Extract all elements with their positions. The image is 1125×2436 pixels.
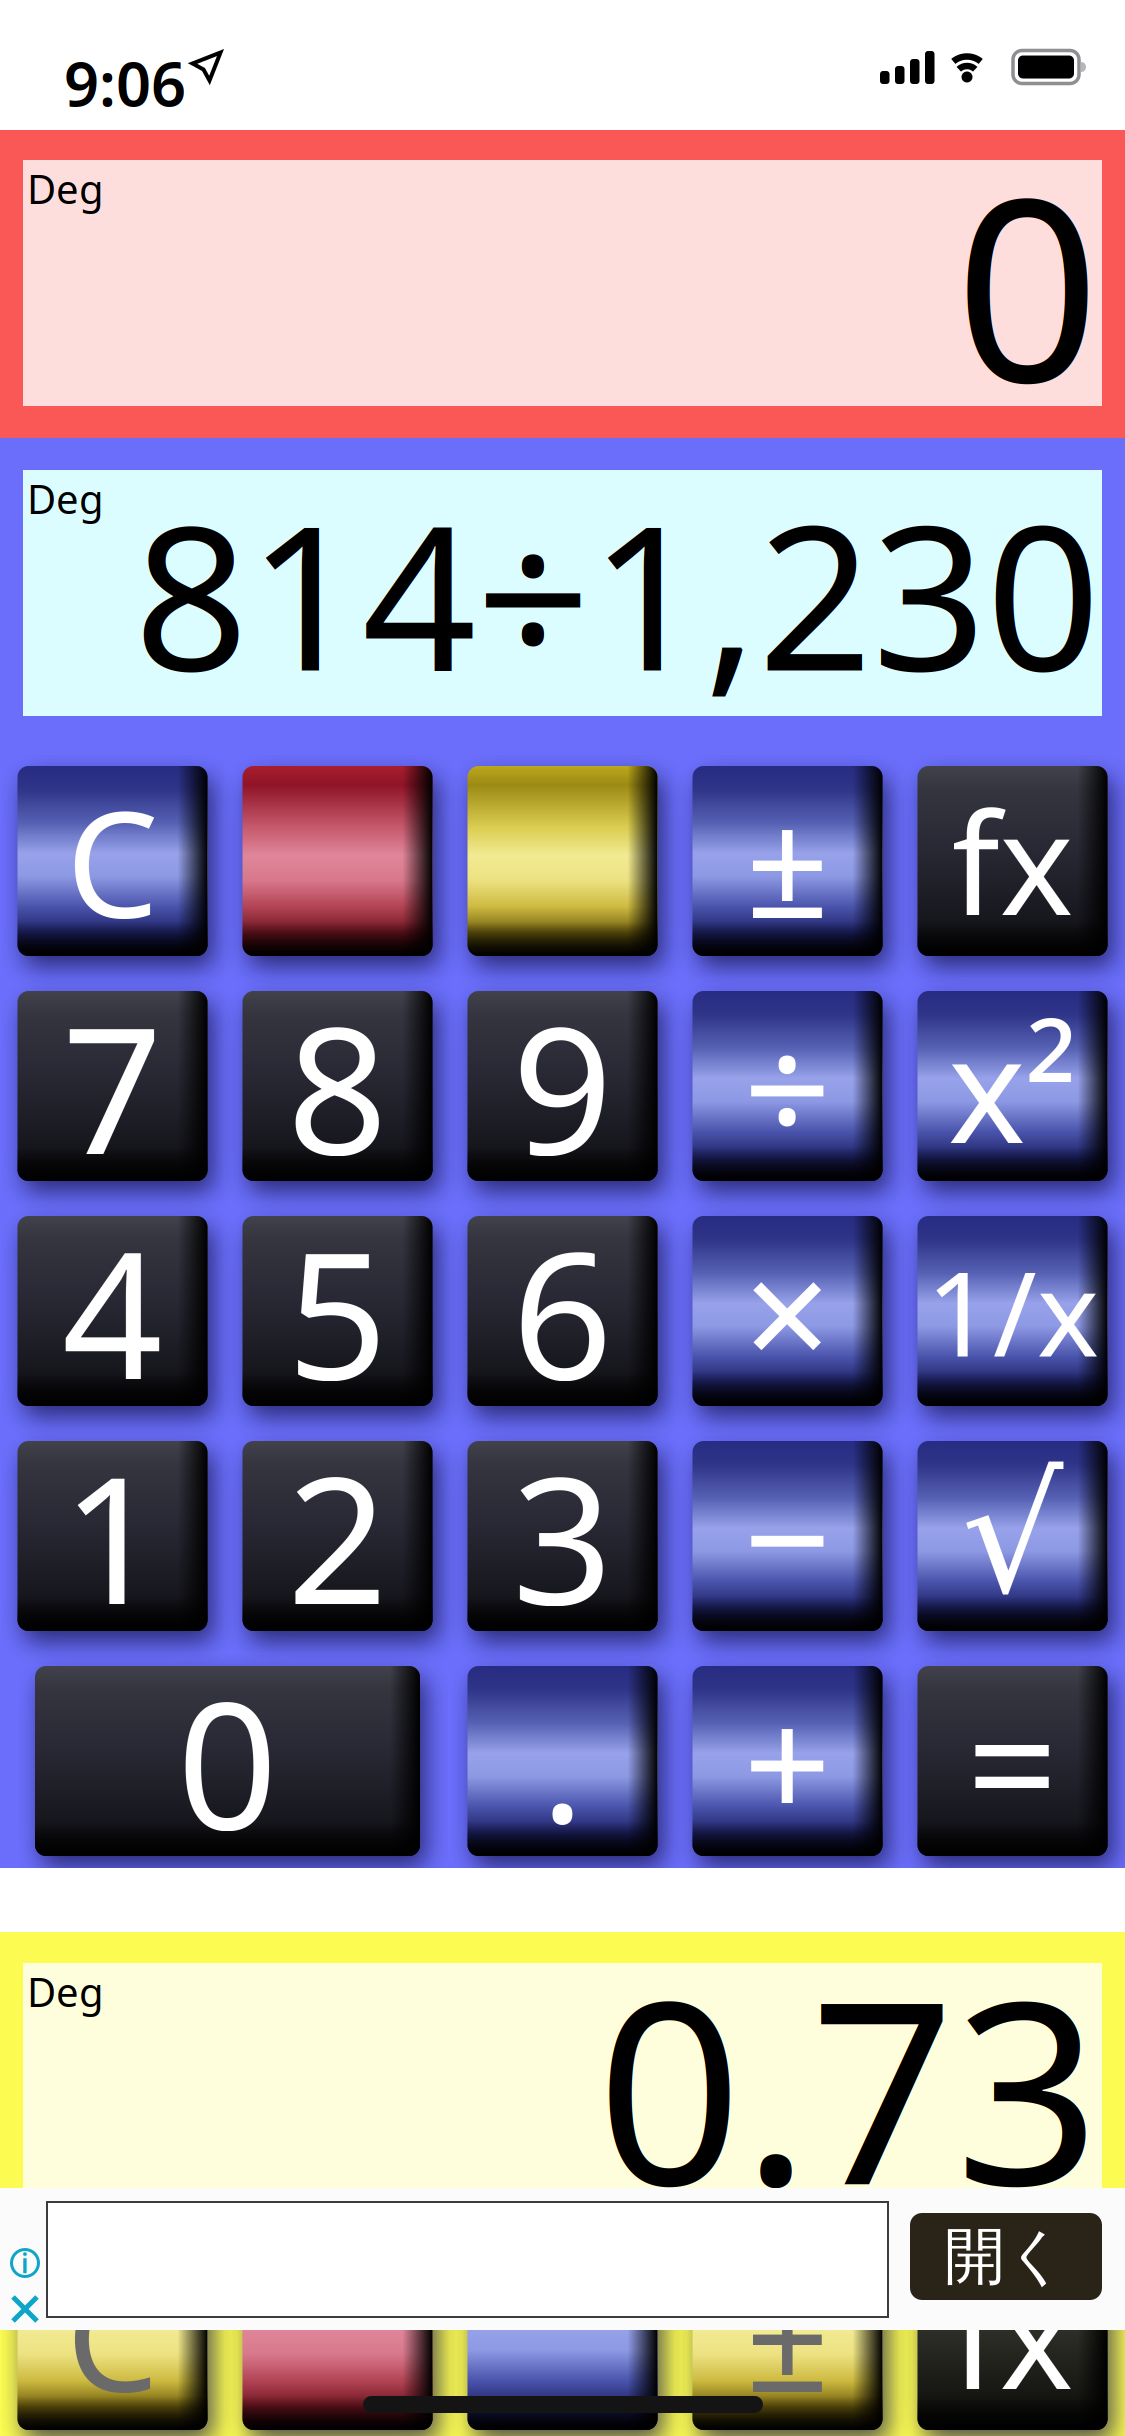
button[interactable]: 4 bbox=[17, 1216, 207, 1406]
button[interactable]: × bbox=[692, 1216, 882, 1406]
button[interactable]: Ad information bbox=[10, 2248, 40, 2278]
staticText: C bbox=[66, 764, 159, 958]
staticText: 1 bbox=[62, 1419, 163, 1653]
staticText: ÷ bbox=[743, 984, 831, 1188]
staticText: Deg bbox=[27, 162, 104, 215]
button[interactable]: ÷ bbox=[692, 991, 882, 1181]
button[interactable]: = bbox=[917, 1666, 1107, 1856]
staticText: 0.73 bbox=[597, 1918, 1100, 2254]
button[interactable]: 9 bbox=[467, 991, 657, 1181]
button[interactable]: ± bbox=[692, 2240, 882, 2430]
staticText: C bbox=[66, 2238, 159, 2432]
staticText: fx bbox=[951, 768, 1073, 954]
button[interactable]: 0 bbox=[35, 1666, 420, 1856]
button[interactable]: 1/x bbox=[917, 1216, 1107, 1406]
staticText: 6 bbox=[512, 1194, 613, 1428]
button[interactable]: 1 bbox=[17, 1441, 207, 1631]
staticText: = bbox=[966, 1655, 1058, 1867]
staticText: Deg bbox=[27, 472, 104, 525]
staticText: √ bbox=[961, 1445, 1063, 1627]
button[interactable]: ± bbox=[692, 766, 882, 956]
button[interactable]: 5 bbox=[242, 1216, 432, 1406]
staticText: 1/x bbox=[926, 1233, 1099, 1389]
button[interactable]: 開く bbox=[910, 2213, 1102, 2300]
staticText: ± bbox=[745, 2238, 829, 2432]
button[interactable]: Close ad bbox=[11, 2295, 39, 2323]
staticText: − bbox=[743, 1434, 831, 1638]
button[interactable]: − bbox=[692, 1441, 882, 1631]
staticText: i bbox=[21, 2245, 29, 2281]
button[interactable]: x² bbox=[917, 991, 1107, 1181]
staticText: 3 bbox=[512, 1419, 613, 1653]
staticText: . bbox=[541, 1655, 584, 1867]
button[interactable]: Red theme bbox=[242, 766, 432, 956]
staticText: 2 bbox=[287, 1419, 388, 1653]
button[interactable]: 2 bbox=[242, 1441, 432, 1631]
button[interactable]: Yellow theme bbox=[467, 766, 657, 956]
staticText: 8 bbox=[287, 969, 388, 1203]
button[interactable]: 8 bbox=[242, 991, 432, 1181]
button[interactable]: Blue theme bbox=[467, 2240, 657, 2430]
staticText: 4 bbox=[62, 1194, 163, 1428]
staticText: 9:06 bbox=[64, 42, 186, 123]
staticText: 9 bbox=[512, 969, 613, 1203]
button[interactable]: . bbox=[467, 1666, 657, 1856]
staticText: 5 bbox=[287, 1194, 388, 1428]
button[interactable]: 3 bbox=[467, 1441, 657, 1631]
staticText: + bbox=[743, 1659, 831, 1863]
button[interactable]: fx bbox=[917, 2240, 1107, 2430]
staticText: Deg bbox=[27, 1965, 104, 2018]
button[interactable]: √ bbox=[917, 1441, 1107, 1631]
button[interactable]: 7 bbox=[17, 991, 207, 1181]
button[interactable]: C bbox=[17, 766, 207, 956]
button[interactable]: fx bbox=[917, 766, 1107, 956]
staticText: 814÷1,230 bbox=[134, 460, 1100, 726]
staticText: ± bbox=[745, 764, 829, 958]
staticText: 0 bbox=[177, 1644, 278, 1878]
button[interactable]: + bbox=[692, 1666, 882, 1856]
staticText: x² bbox=[948, 989, 1077, 1183]
button[interactable]: 6 bbox=[467, 1216, 657, 1406]
button[interactable]: C bbox=[17, 2240, 207, 2430]
staticText: 7 bbox=[62, 969, 163, 1203]
staticText: 0 bbox=[955, 115, 1100, 451]
staticText: fx bbox=[951, 2242, 1073, 2428]
button[interactable]: Red theme bbox=[242, 2240, 432, 2430]
staticText: × bbox=[743, 1209, 831, 1413]
staticText: 開く bbox=[944, 2219, 1068, 2294]
